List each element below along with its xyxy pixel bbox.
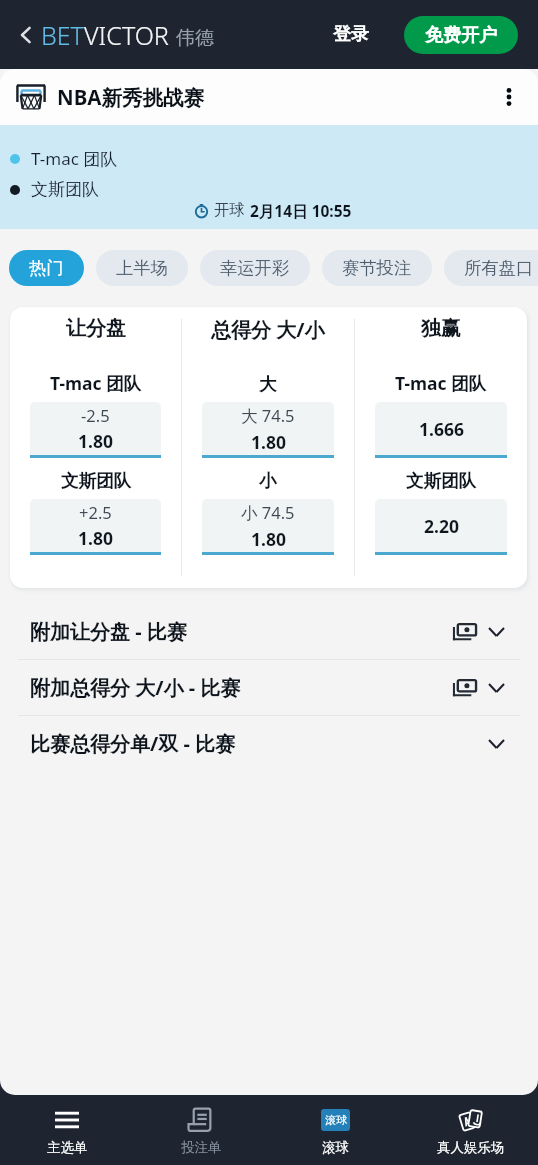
button[interactable]: 1.666 [375,402,507,458]
staticText: T-mac 团队 [395,371,487,395]
staticText: 所有盘口 [464,257,534,279]
staticText: 2月14日 10:55 [250,200,352,220]
staticText: 附加让分盘 - 比赛 [30,618,187,645]
staticText: 热门 [29,257,64,279]
staticText: NBA新秀挑战赛 [57,83,204,111]
staticText: 免费开户 [425,24,497,47]
staticText: 1.80 [78,429,113,453]
staticText: 伟德 [176,26,214,50]
button[interactable]: 免费开户 [404,16,518,54]
button[interactable]: 热门 [9,250,84,286]
staticText: T-mac 团队 [31,147,118,170]
staticText: 真人娱乐场 [437,1139,505,1156]
staticText: 登录 [333,23,369,46]
button[interactable]: 滚球 [268,1095,403,1165]
staticText: 赛节投注 [342,257,412,279]
button[interactable]: 小 74.5 [202,499,334,555]
staticText: BET [41,18,84,52]
staticText: 小 [259,470,277,492]
staticText: 文斯团队 [61,470,131,492]
staticText: 1.80 [251,527,286,551]
button[interactable]: 附加总得分 大/小 - 比赛 [0,660,538,715]
staticText: 总得分 大/小 [211,316,325,343]
button[interactable]: +2.5 [30,499,161,555]
staticText: VICTOR [84,18,169,52]
button[interactable]: 附加让分盘 - 比赛 [0,604,538,659]
staticText: 滚球 [325,1113,347,1127]
button[interactable]: 比赛总得分单/双 - 比赛 [0,716,538,771]
staticText: 主选单 [47,1139,88,1156]
staticText: 开球 [214,200,245,220]
staticText: 滚球 [322,1139,349,1156]
staticText: 小 74.5 [241,501,295,524]
staticText: 1.666 [419,417,464,441]
button[interactable]: -2.5 [30,402,161,458]
staticText: 比赛总得分单/双 - 比赛 [30,730,236,757]
staticText: +2.5 [79,501,112,523]
button[interactable]: 投注单 [134,1095,268,1165]
staticText: 上半场 [116,257,168,279]
button[interactable]: 大 74.5 [202,402,334,458]
button[interactable]: 所有盘口 [444,250,538,286]
staticText: 1.80 [251,430,286,454]
button[interactable]: 赛节投注 [322,250,432,286]
button[interactable]: 真人娱乐场 [403,1095,538,1165]
button[interactable]: More options [494,82,524,112]
staticText: T-mac 团队 [50,371,142,395]
staticText: 大 [259,373,277,395]
button[interactable]: 幸运开彩 [200,250,310,286]
staticText: 文斯团队 [31,179,99,200]
button[interactable]: 2.20 [375,499,507,555]
button[interactable]: 登录 [327,17,375,52]
staticText: 1.80 [78,526,113,550]
button[interactable]: 主选单 [0,1095,134,1165]
staticText: 让分盘 [66,316,126,341]
button[interactable]: 上半场 [96,250,188,286]
staticText: 文斯团队 [406,470,476,492]
staticText: 大 74.5 [241,404,295,427]
staticText: -2.5 [81,404,110,426]
button[interactable]: Back [13,22,39,48]
staticText: 幸运开彩 [220,257,290,279]
staticText: 2.20 [424,514,459,538]
staticText: 附加总得分 大/小 - 比赛 [30,674,241,701]
staticText: 独赢 [421,316,461,341]
staticText: 投注单 [181,1139,222,1156]
